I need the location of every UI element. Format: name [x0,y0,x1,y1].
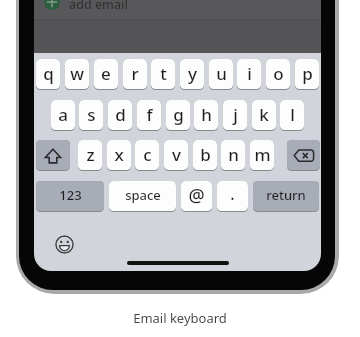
button[interactable] [55,235,74,254]
button[interactable]: o [266,59,290,89]
button[interactable]: e [94,59,118,89]
button[interactable]: j [223,100,247,130]
button[interactable]: g [166,100,190,130]
button[interactable] [44,0,60,10]
staticText: n [228,143,239,166]
staticText: x [114,143,124,166]
staticText: w [70,62,84,85]
staticText: q [43,62,54,85]
staticText: space [125,186,161,204]
staticText: add email [69,0,128,13]
staticText: s [87,103,96,126]
staticText: p [302,62,313,85]
staticText: o [273,62,284,85]
staticText: i [247,62,252,85]
button[interactable]: b [193,140,217,170]
button[interactable]: return [253,181,319,211]
staticText: f [146,103,153,126]
button[interactable]: c [135,140,159,170]
staticText: . [230,183,235,205]
button[interactable]: s [79,100,103,130]
staticText: u [216,62,227,85]
button[interactable]: v [164,140,188,170]
button[interactable] [36,140,70,170]
button[interactable]: w [65,59,89,89]
staticText: j [233,103,238,126]
button[interactable]: z [78,140,102,170]
staticText: Email keyboard [0,309,360,327]
button[interactable]: p [295,59,319,89]
button[interactable]: . [217,181,248,211]
staticText: m [254,143,271,166]
staticText: e [101,62,111,85]
button[interactable]: q [36,59,60,89]
button[interactable]: space [109,181,176,211]
button[interactable]: h [194,100,218,130]
button[interactable]: 123 [36,181,104,211]
button[interactable]: m [250,140,274,170]
staticText: @ [188,183,205,208]
staticText: d [115,103,126,126]
button[interactable]: @ [181,181,212,211]
button[interactable]: i [237,59,261,89]
button[interactable] [287,140,320,170]
staticText: h [201,103,212,126]
button[interactable]: t [151,59,175,89]
button[interactable]: x [107,140,131,170]
staticText: t [160,62,167,85]
staticText: v [172,143,181,166]
staticText: 123 [59,186,82,204]
button[interactable]: u [209,59,233,89]
staticText: a [58,103,68,126]
button[interactable]: a [51,100,75,130]
staticText: l [290,103,295,126]
staticText: return [266,186,306,204]
staticText: b [200,143,211,166]
button[interactable]: n [221,140,245,170]
staticText: y [188,62,197,85]
button[interactable]: l [280,100,304,130]
staticText: k [259,103,269,126]
button[interactable]: y [180,59,204,89]
button[interactable]: k [252,100,276,130]
staticText: c [143,143,152,166]
button[interactable]: d [108,100,132,130]
button[interactable]: f [137,100,161,130]
staticText: r [131,62,139,85]
staticText: z [86,143,95,166]
staticText: g [173,103,184,126]
button[interactable]: r [123,59,147,89]
